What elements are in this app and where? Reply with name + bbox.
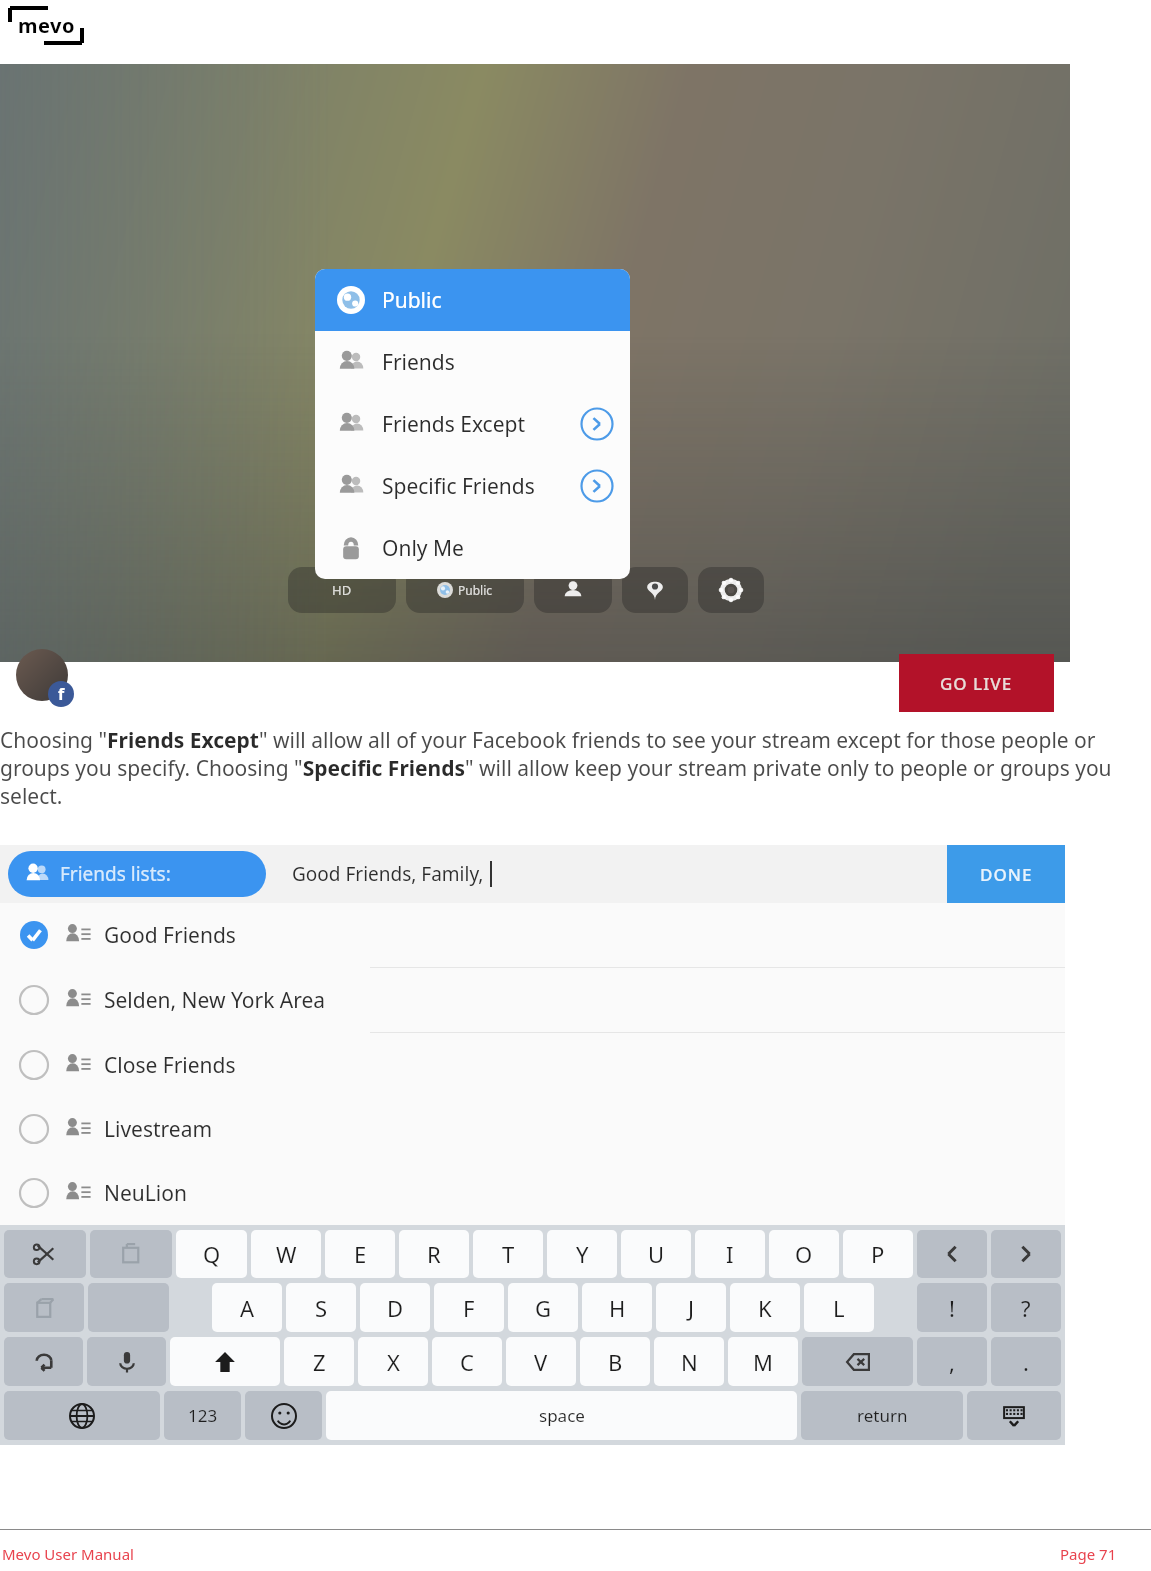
button[interactable]: G bbox=[508, 1283, 578, 1332]
button[interactable]: ? bbox=[991, 1283, 1061, 1332]
button[interactable]: X bbox=[358, 1337, 428, 1386]
button[interactable]: Y bbox=[547, 1230, 617, 1278]
button[interactable]: Friends Except bbox=[315, 393, 630, 455]
button[interactable]: Paste bbox=[4, 1283, 84, 1332]
staticText: K bbox=[758, 1293, 772, 1323]
button[interactable]: L bbox=[804, 1283, 874, 1332]
button[interactable]: Dictate bbox=[87, 1337, 166, 1386]
button[interactable]: I bbox=[695, 1230, 765, 1278]
button[interactable]: Q bbox=[176, 1230, 247, 1278]
button[interactable]: O bbox=[769, 1230, 839, 1278]
staticText: Specific Friends bbox=[382, 472, 535, 501]
staticText: W bbox=[276, 1239, 297, 1269]
staticText: B bbox=[608, 1347, 623, 1377]
staticText: G bbox=[535, 1293, 552, 1323]
staticText: R bbox=[427, 1239, 441, 1269]
button[interactable]: Friends bbox=[315, 331, 630, 393]
button[interactable]: NeuLion bbox=[0, 1161, 1065, 1225]
button[interactable]: Settings bbox=[698, 567, 764, 613]
staticText: return bbox=[857, 1404, 908, 1427]
button[interactable]: ! bbox=[917, 1283, 987, 1332]
button[interactable]: Backspace bbox=[802, 1337, 913, 1386]
staticText: Page 71 bbox=[1060, 1544, 1117, 1564]
staticText: I bbox=[726, 1239, 734, 1269]
button[interactable]: Emoji bbox=[245, 1391, 322, 1440]
button[interactable]: , bbox=[917, 1337, 987, 1386]
staticText: , bbox=[949, 1347, 955, 1377]
staticText: Friends Except bbox=[382, 410, 526, 439]
staticText: Good Friends, Family, bbox=[292, 861, 484, 887]
button[interactable]: A bbox=[212, 1283, 282, 1332]
button[interactable]: W bbox=[251, 1230, 321, 1278]
button[interactable]: E bbox=[325, 1230, 395, 1278]
staticText: Mevo User Manual bbox=[2, 1544, 134, 1564]
staticText: J bbox=[688, 1293, 695, 1323]
staticText: . bbox=[1023, 1347, 1029, 1377]
button[interactable]: T bbox=[473, 1230, 543, 1278]
button[interactable]: Shift bbox=[170, 1337, 280, 1386]
button[interactable]: S bbox=[286, 1283, 356, 1332]
button[interactable]: HD bbox=[288, 567, 396, 613]
button[interactable]: Only Me bbox=[315, 517, 630, 579]
button[interactable]: 123 bbox=[164, 1391, 241, 1440]
staticText: C bbox=[460, 1347, 474, 1377]
staticText: M bbox=[753, 1347, 773, 1377]
button[interactable]: J bbox=[656, 1283, 726, 1332]
button[interactable]: Good Friends bbox=[0, 903, 1065, 967]
button[interactable]: Location bbox=[622, 567, 688, 613]
button[interactable]: Public bbox=[406, 567, 524, 613]
staticText: GO LIVE bbox=[940, 672, 1013, 695]
button[interactable]: K bbox=[730, 1283, 800, 1332]
button[interactable]: GO LIVE bbox=[899, 654, 1054, 712]
button[interactable]: Profile bbox=[16, 649, 68, 701]
staticText: O bbox=[795, 1239, 813, 1269]
button[interactable]: Livestream bbox=[0, 1097, 1065, 1161]
button[interactable]: F bbox=[434, 1283, 504, 1332]
button[interactable]: N bbox=[654, 1337, 724, 1386]
button[interactable]: D bbox=[360, 1283, 430, 1332]
staticText: Public bbox=[458, 582, 493, 598]
button[interactable]: Z bbox=[284, 1337, 354, 1386]
staticText: Only Me bbox=[382, 534, 464, 563]
button[interactable]: V bbox=[506, 1337, 576, 1386]
button[interactable]: H bbox=[582, 1283, 652, 1332]
button[interactable]: People bbox=[534, 567, 612, 613]
button[interactable]: Undo bbox=[4, 1337, 83, 1386]
button[interactable]: Friends lists: bbox=[8, 851, 266, 897]
button[interactable]: P bbox=[843, 1230, 913, 1278]
button[interactable]: Selden, New York Area bbox=[0, 968, 1065, 1032]
button[interactable]: C bbox=[432, 1337, 502, 1386]
button[interactable]: Public bbox=[315, 269, 630, 331]
button[interactable]: . bbox=[991, 1337, 1061, 1386]
staticText: E bbox=[354, 1239, 367, 1269]
button[interactable]: space bbox=[326, 1391, 797, 1440]
staticText: X bbox=[387, 1347, 400, 1377]
button[interactable]: Language bbox=[4, 1391, 160, 1440]
button[interactable]: Left bbox=[917, 1230, 987, 1278]
staticText: f bbox=[58, 683, 65, 705]
button[interactable]: Cut bbox=[4, 1230, 86, 1278]
button[interactable]: B bbox=[580, 1337, 650, 1386]
staticText: ? bbox=[1021, 1293, 1031, 1323]
button[interactable]: Right bbox=[991, 1230, 1061, 1278]
staticText: Friends bbox=[382, 348, 455, 377]
staticText: mevo bbox=[18, 12, 75, 39]
button[interactable]: M bbox=[728, 1337, 798, 1386]
staticText: NeuLion bbox=[104, 1179, 187, 1208]
button[interactable]: R bbox=[399, 1230, 469, 1278]
button[interactable]: DONE bbox=[947, 845, 1065, 903]
staticText: Livestream bbox=[104, 1115, 213, 1144]
button[interactable]: Hide keyboard bbox=[967, 1391, 1061, 1440]
staticText: F bbox=[463, 1293, 475, 1323]
button[interactable]: Specific Friends bbox=[315, 455, 630, 517]
button[interactable]: Close Friends bbox=[0, 1033, 1065, 1097]
button[interactable]: U bbox=[621, 1230, 691, 1278]
button[interactable]: Copy bbox=[90, 1230, 172, 1278]
staticText: A bbox=[240, 1293, 255, 1323]
button[interactable]: return bbox=[801, 1391, 963, 1440]
staticText: Friends lists: bbox=[60, 861, 171, 887]
staticText: Close Friends bbox=[104, 1051, 236, 1080]
staticText: 123 bbox=[188, 1404, 218, 1427]
